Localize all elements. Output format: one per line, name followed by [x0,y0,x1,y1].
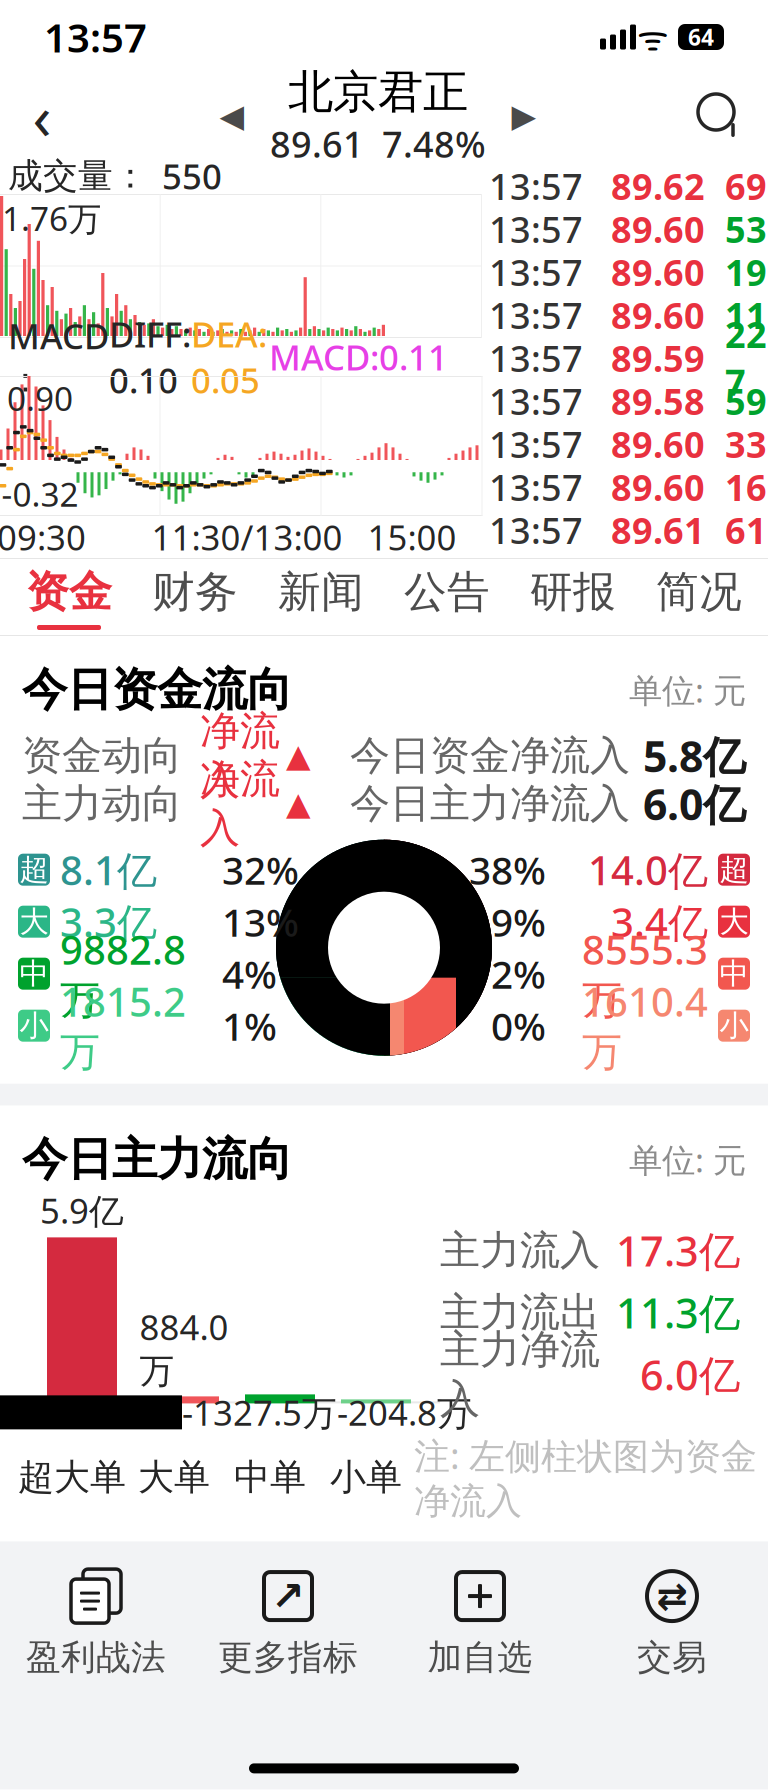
staticText: 1610.4万 [582,975,708,1077]
staticText: 17.3亿 [616,1223,740,1278]
staticText: MACD:0.11 [269,334,448,380]
staticText: 小 [719,1008,748,1044]
staticText: 6.0亿 [643,775,746,832]
staticText: DIFF:0.10 [109,311,191,403]
button[interactable]: ↗ [192,1559,384,1687]
staticText: 89.62 [611,162,705,210]
staticText: 89.59 [611,334,705,382]
button[interactable]: 下一只股票 [494,79,554,153]
staticText: 32% [222,844,299,895]
staticText: 大单 [138,1455,210,1499]
button[interactable]: 返回 [0,79,84,153]
staticText: ◀ [219,98,244,134]
staticText: 13:57 [489,205,583,253]
staticText: -0.32 [1,472,78,516]
staticText: 11 [725,291,767,339]
staticText: 单位: 元 [629,1137,746,1182]
staticText: 主力动向 [22,779,182,828]
staticText: 0.90 [7,376,73,420]
staticText: ▲ [286,785,311,822]
button[interactable]: 搜索 [672,79,768,153]
staticText: 6.0亿 [640,1347,740,1402]
staticText: 9882.8万 [60,923,186,1025]
staticText: 净流入 [200,707,280,805]
staticText: 0% [491,1000,546,1051]
button[interactable]: ⇄ [576,1559,768,1687]
button[interactable]: 加自选 [384,1559,576,1687]
staticText: 89.61 [611,506,705,554]
staticText: 3.4亿 [611,895,708,948]
button[interactable]: 上一只股票 [202,79,262,153]
staticText: 加自选 [427,1636,532,1679]
staticText: 今日主力流向 [22,1132,292,1187]
staticText: 09:30 [0,514,86,560]
staticText: ‹ [32,75,51,157]
staticText: 1815.2万 [60,975,186,1077]
button[interactable]: 新闻 [258,559,384,635]
staticText: 中 [719,956,748,992]
staticText: 89.58 [611,377,705,425]
staticText: 61 [725,506,767,554]
staticText: 14.0亿 [588,843,708,896]
staticText: 盈利战法 [26,1636,166,1679]
staticText: 研报 [530,566,616,618]
staticText: 89.61 [270,120,364,168]
staticText: 38% [469,844,546,895]
staticText: 主力流入 [440,1226,600,1275]
staticText: ▲ [286,737,311,774]
staticText: 今日资金净流入 [350,731,630,780]
staticText: 北京君正 [288,64,468,120]
button[interactable]: 盈利战法 [0,1559,192,1687]
staticText: 884.0万 [139,1304,228,1392]
staticText: 成交量： [8,155,148,197]
staticText: 89.60 [611,248,705,296]
staticText: -1327.5万 [182,1389,337,1435]
staticText: 主力流出 [440,1288,600,1337]
staticText: 53 [725,205,767,253]
staticText: 15:00 [367,514,456,560]
button[interactable]: 财务 [132,559,258,635]
staticText: 13:57 [489,420,583,468]
staticText: 7.48% [382,120,486,168]
staticText: ↗ [271,1573,305,1619]
button[interactable]: 简况 [636,559,762,635]
staticText: 89.60 [611,205,705,253]
staticText: 59 [725,377,767,425]
staticText: DEA:0.05 [191,311,269,403]
staticText: 89.60 [611,463,705,511]
staticText: 69 [725,162,767,210]
staticText: 1% [222,1000,277,1051]
staticText: 2% [491,948,546,999]
staticText: 13:57 [489,506,583,554]
staticText: 5.8亿 [643,727,746,784]
staticText: 超 [19,852,48,888]
staticText: 89.60 [611,420,705,468]
staticText: 64 [688,22,714,52]
button[interactable]: 研报 [510,559,636,635]
staticText: 1.76万 [2,196,101,240]
staticText: 净流入 [200,755,280,853]
staticText: 13:57 [44,10,147,63]
staticText: 11:30/13:00 [151,514,342,560]
button[interactable]: 资金 [6,559,132,635]
staticText: 11.3亿 [616,1285,740,1340]
button[interactable]: 公告 [384,559,510,635]
staticText: 小单 [330,1455,402,1499]
staticText: 财务 [152,566,238,618]
staticText: 13:57 [489,377,583,425]
staticText: 33 [725,420,767,468]
staticText: 13:57 [489,334,583,382]
staticText: 550 [162,153,222,199]
staticText: 8555.3万 [582,923,708,1025]
staticText: 13:57 [489,291,583,339]
staticText: 中 [19,956,48,992]
staticText: 资金动向 [22,731,182,780]
staticText: 19 [725,248,767,296]
staticText: 4% [222,948,277,999]
staticText: 单位: 元 [629,668,746,712]
staticText: 主力净流入 [440,1325,600,1423]
staticText: 简况 [656,566,742,618]
staticText: 13:57 [489,162,583,210]
staticText: 超大单 [18,1455,126,1499]
staticText: 13:57 [489,463,583,511]
